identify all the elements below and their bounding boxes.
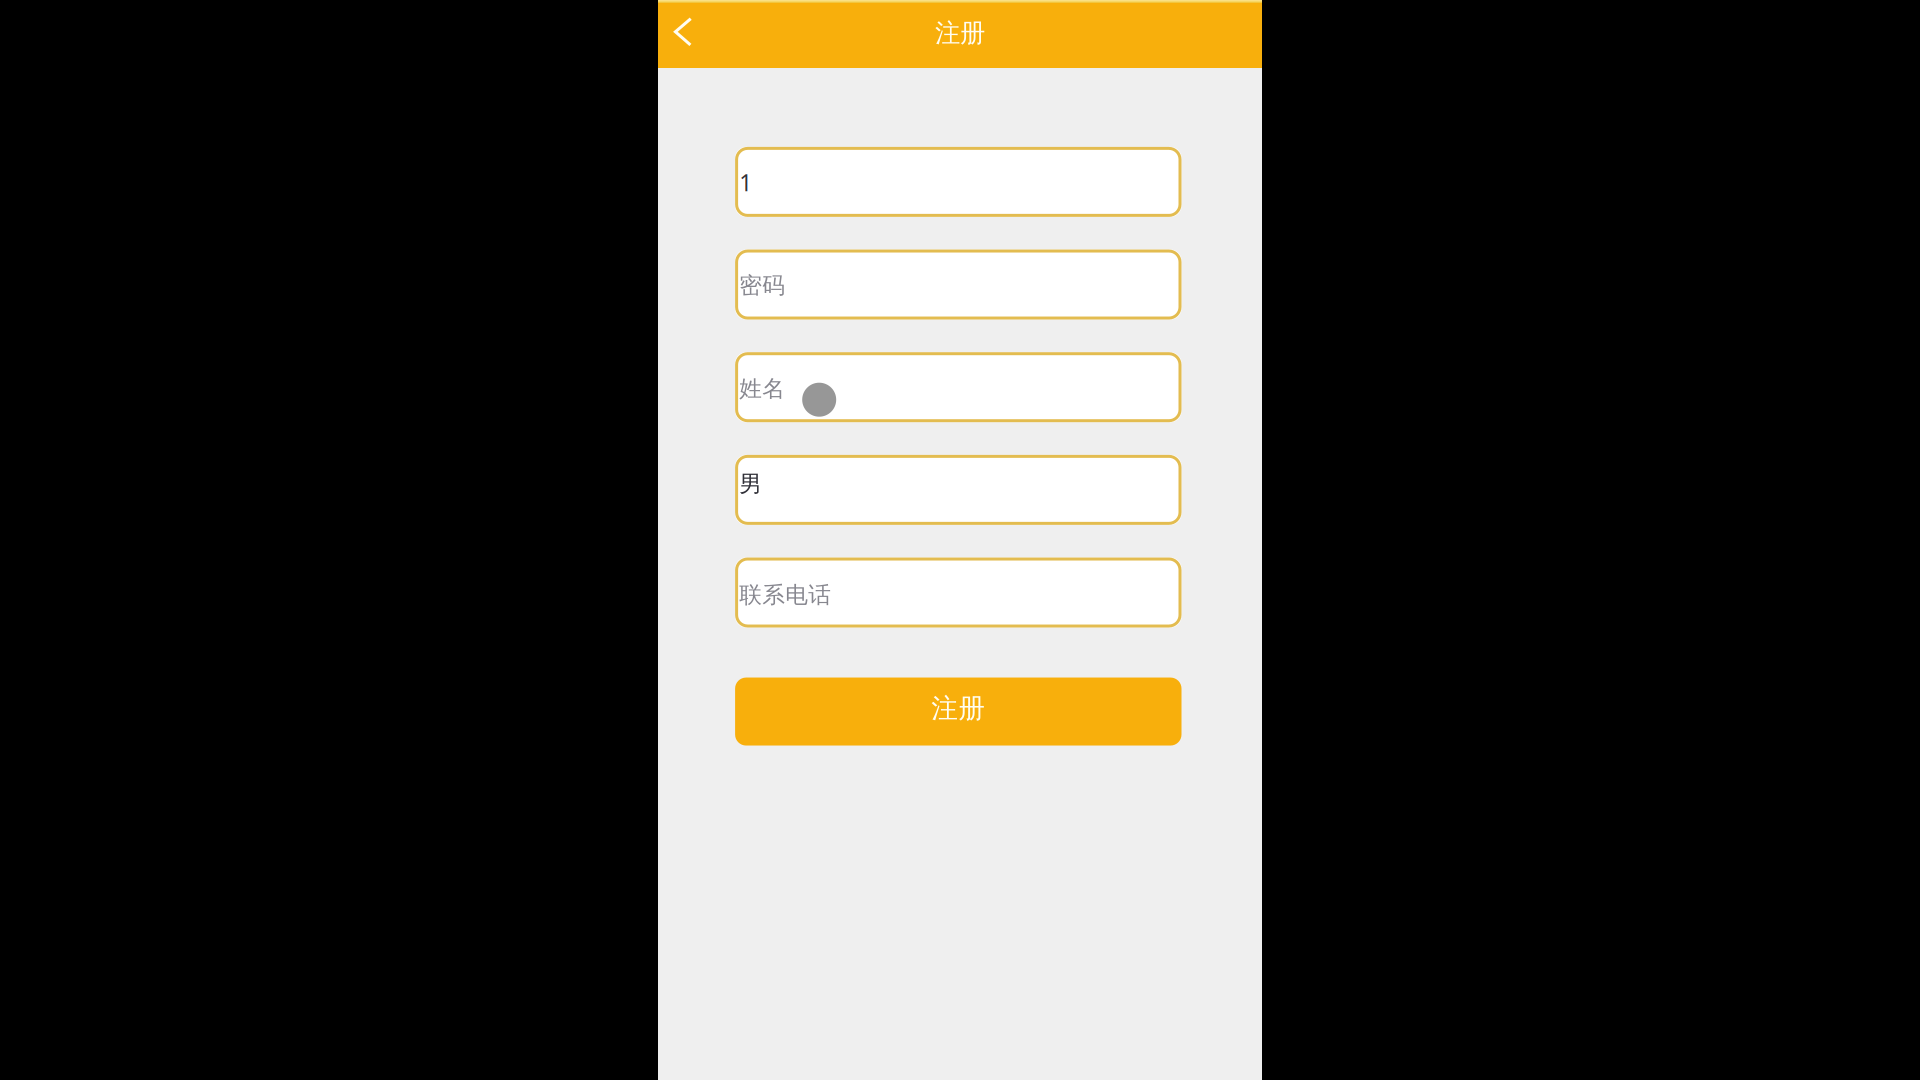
button[interactable]: 密码 (735, 250, 1181, 320)
staticText: 注册 (935, 17, 985, 48)
staticText: 注册 (931, 692, 985, 725)
button[interactable]: Back (664, 12, 704, 56)
staticText: 男 (739, 470, 762, 498)
staticText: 1 (739, 167, 752, 197)
button[interactable]: 账号 (735, 147, 1181, 217)
staticText: 联系电话 (739, 581, 831, 609)
button[interactable]: 注册 (735, 677, 1181, 745)
button[interactable]: 性别 (735, 455, 1181, 525)
staticText: 密码 (739, 272, 785, 299)
staticText: 姓名 (739, 375, 785, 403)
button[interactable]: 姓名 (735, 352, 1181, 422)
button[interactable]: 联系电话 (735, 557, 1181, 627)
